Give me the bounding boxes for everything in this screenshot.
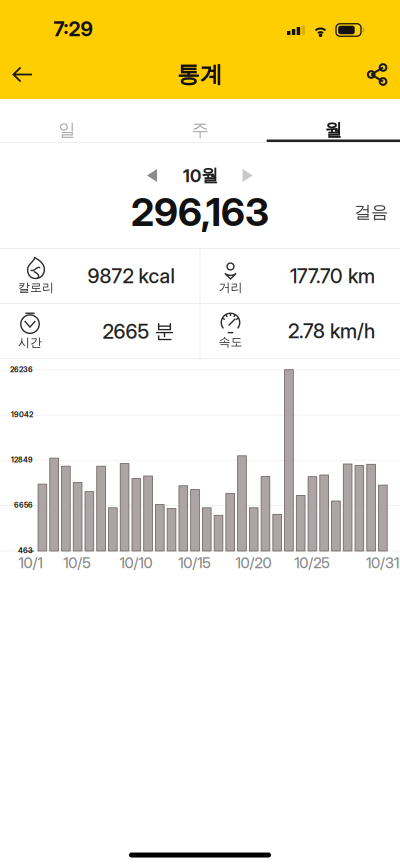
staticText: 시간 — [18, 335, 42, 350]
staticText: 칼로리 — [18, 280, 54, 295]
staticText: 26236 — [10, 365, 33, 374]
staticText: 10/15 — [178, 554, 211, 572]
staticText: 10월 — [183, 165, 218, 186]
staticText: 9872 kcal — [87, 264, 174, 288]
staticText: 12849 — [11, 455, 33, 464]
button[interactable]: 속도 — [200, 304, 400, 358]
button[interactable]: Share — [355, 50, 400, 99]
staticText: 2665 분 — [102, 318, 174, 344]
staticText: 거리 — [218, 280, 242, 295]
staticText: 주 — [191, 119, 208, 141]
staticText: 7:29 — [53, 17, 92, 41]
staticText: 10/5 — [63, 554, 91, 572]
button[interactable]: 거리 — [200, 249, 400, 303]
staticText: 월 — [325, 119, 342, 141]
staticText: 속도 — [218, 334, 242, 349]
staticText: 10/10 — [120, 554, 153, 572]
staticText: 10/31 — [366, 554, 399, 572]
staticText: 6656 — [14, 501, 33, 510]
button[interactable]: 주 — [133, 99, 267, 142]
button[interactable]: 일 — [0, 99, 133, 142]
staticText: 통계 — [177, 60, 223, 89]
staticText: 177.70 km — [290, 264, 375, 288]
button[interactable]: 시간 — [0, 304, 199, 358]
button[interactable]: Back — [0, 50, 45, 99]
staticText: 10/1 — [18, 554, 42, 572]
staticText: 10/20 — [235, 554, 271, 572]
staticText: 463 — [18, 546, 33, 555]
button[interactable]: 월 — [267, 99, 400, 142]
staticText: 296,163 — [131, 189, 269, 235]
button[interactable]: 칼로리 — [0, 249, 199, 303]
staticText: 걸음 — [354, 201, 388, 223]
staticText: 2.78 km/h — [288, 319, 375, 343]
button[interactable]: Next month — [231, 158, 263, 193]
staticText: 19042 — [11, 410, 33, 419]
staticText: 10/25 — [294, 554, 330, 572]
button[interactable]: Previous month — [136, 158, 168, 193]
staticText: 일 — [58, 119, 75, 141]
